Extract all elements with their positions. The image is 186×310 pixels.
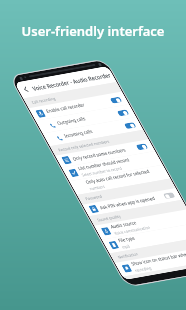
staticText: Notification (116, 251, 140, 260)
staticText: Voice Recorder - Audio Recorder (30, 71, 112, 92)
button[interactable]: Incoming calls (43, 117, 143, 146)
staticText: Sound quality (96, 213, 122, 223)
button[interactable]: List number should record (62, 151, 163, 181)
staticText: Incoming calls (63, 123, 125, 140)
staticText: Ask PIN when app is opened (99, 194, 164, 211)
staticText: Only auto call record for selected (84, 168, 151, 186)
staticText: Record only selected numbers (57, 138, 110, 153)
staticText: Call recording (30, 95, 56, 105)
staticText: File type (117, 235, 137, 244)
button[interactable]: Only record some numbers (55, 139, 155, 167)
staticText: User-friendly interface (0, 22, 186, 40)
staticText: Audio source (109, 220, 138, 231)
button[interactable]: Only auto call record for selected (69, 165, 170, 195)
staticText: Outgoing calls (56, 110, 118, 127)
staticText: Other (128, 274, 140, 277)
staticText: Voice communication (113, 224, 152, 236)
staticText: numbers (88, 183, 106, 191)
button[interactable]: Back (14, 66, 117, 99)
staticText: Only record some numbers (71, 145, 137, 163)
button[interactable]: File type (102, 223, 186, 253)
other: Back (21, 85, 31, 94)
button[interactable]: Outgoing calls (36, 104, 136, 134)
button[interactable]: Audio source (94, 209, 186, 240)
button[interactable]: Ask PIN when app is opened (82, 188, 182, 216)
staticText: List number should record (77, 157, 131, 172)
button[interactable]: Enable call recorder (28, 91, 129, 121)
staticText: recording (133, 265, 153, 273)
button[interactable]: Show icon on status bar when (115, 246, 186, 277)
staticText: Select number to record (80, 165, 123, 178)
staticText: Enable call recorder (45, 98, 111, 115)
staticText: mp3 (120, 243, 131, 250)
staticText: Show icon on status bar when (130, 251, 186, 268)
staticText: Password (84, 193, 103, 201)
